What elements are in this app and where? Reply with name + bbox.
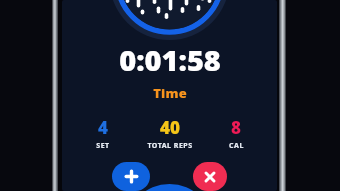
staticText: TOTAL REPS [147, 141, 193, 151]
button[interactable]: Stop workout [193, 162, 227, 191]
staticText: CAL [229, 141, 244, 151]
staticText: 8 [231, 116, 241, 139]
staticText: SET [96, 141, 110, 151]
button[interactable]: 8 [207, 116, 265, 151]
staticText: 40 [160, 116, 180, 139]
staticText: 0:01:58 [119, 40, 221, 79]
staticText: Time [153, 84, 187, 102]
button[interactable]: 40 [132, 116, 207, 151]
button[interactable]: 4 [74, 116, 132, 151]
staticText: 4 [98, 116, 108, 139]
button[interactable]: Add set [112, 162, 150, 191]
